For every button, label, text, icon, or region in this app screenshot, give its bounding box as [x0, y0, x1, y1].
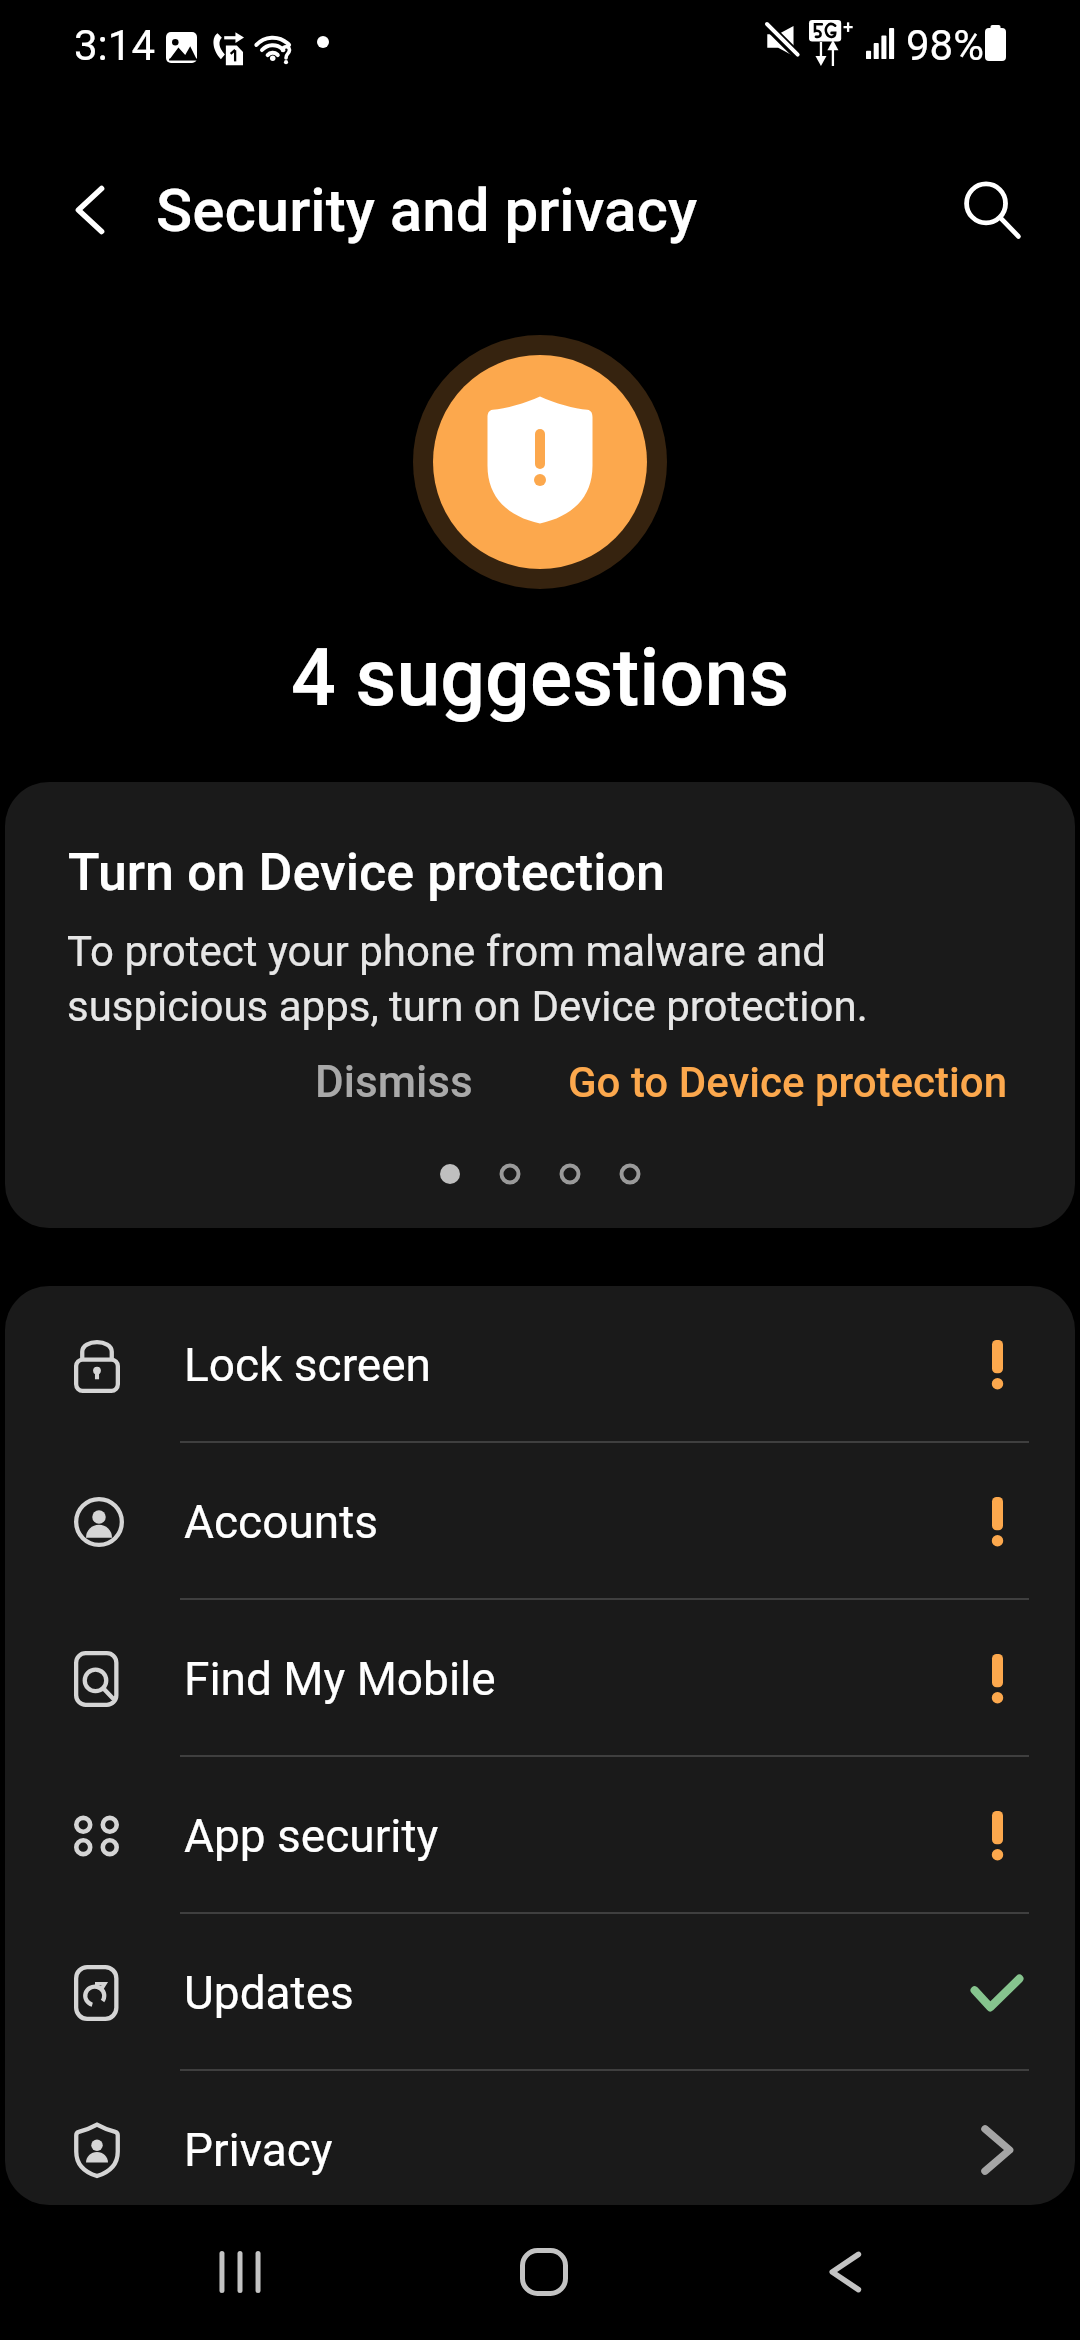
button[interactable]: Recent apps	[180, 2220, 300, 2324]
staticText: Dismiss	[315, 1056, 473, 1108]
button[interactable]: Go to Device protection	[554, 1048, 1022, 1117]
staticText: 4 suggestions	[291, 632, 790, 725]
button[interactable]: Find My Mobile	[5, 1600, 1075, 1757]
staticText: Security and privacy	[156, 175, 698, 245]
staticText: Turn on Device protection	[68, 842, 666, 903]
staticText: Accounts	[184, 1495, 378, 1549]
button[interactable]: Navigate up	[42, 162, 138, 258]
staticText: Find My Mobile	[184, 1652, 496, 1706]
staticText: Updates	[184, 1966, 354, 2020]
staticText: 98%	[906, 21, 984, 70]
staticText: App security	[184, 1809, 439, 1863]
staticText: 3:14	[74, 21, 155, 70]
button[interactable]: Search	[944, 162, 1040, 258]
staticText: Go to Device protection	[568, 1058, 1008, 1107]
button[interactable]: Updates	[5, 1914, 1075, 2071]
button[interactable]: Dismiss	[301, 1046, 487, 1118]
button[interactable]: Privacy	[5, 2071, 1075, 2205]
button[interactable]: Home	[484, 2220, 604, 2324]
staticText: To protect your phone from malware and s…	[67, 927, 868, 1031]
button[interactable]: Turn on Device protection	[5, 782, 1075, 1228]
button[interactable]: Lock screen	[5, 1286, 1075, 1443]
button[interactable]: Back	[785, 2220, 905, 2324]
button[interactable]: Accounts	[5, 1443, 1075, 1600]
staticText: Lock screen	[184, 1338, 431, 1392]
button[interactable]: App security	[5, 1757, 1075, 1914]
staticText: Privacy	[184, 2123, 333, 2177]
